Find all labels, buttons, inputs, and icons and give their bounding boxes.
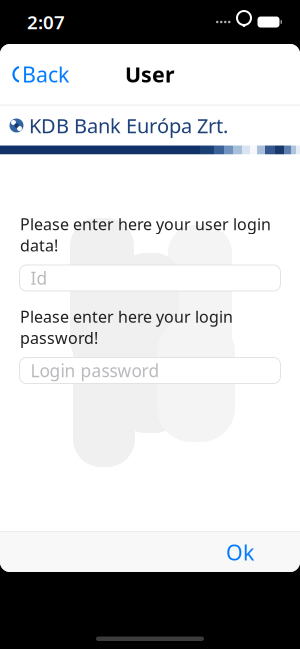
staticText: Ok <box>226 538 254 566</box>
staticText: Id <box>30 266 47 289</box>
staticText: 2:07 <box>27 10 65 34</box>
button[interactable]: Id <box>19 265 280 291</box>
staticText: Please enter here your login password! <box>20 306 233 348</box>
staticText: User <box>125 60 175 88</box>
staticText: Login password <box>30 359 159 382</box>
button[interactable]: Ok <box>212 529 268 575</box>
staticText: Back <box>22 60 69 88</box>
button[interactable]: Back <box>0 52 79 96</box>
staticText: Please enter here your user login data! <box>20 213 271 256</box>
button[interactable]: Login password <box>19 357 280 383</box>
staticText: KDB Bank Európa Zrt. <box>29 112 228 139</box>
